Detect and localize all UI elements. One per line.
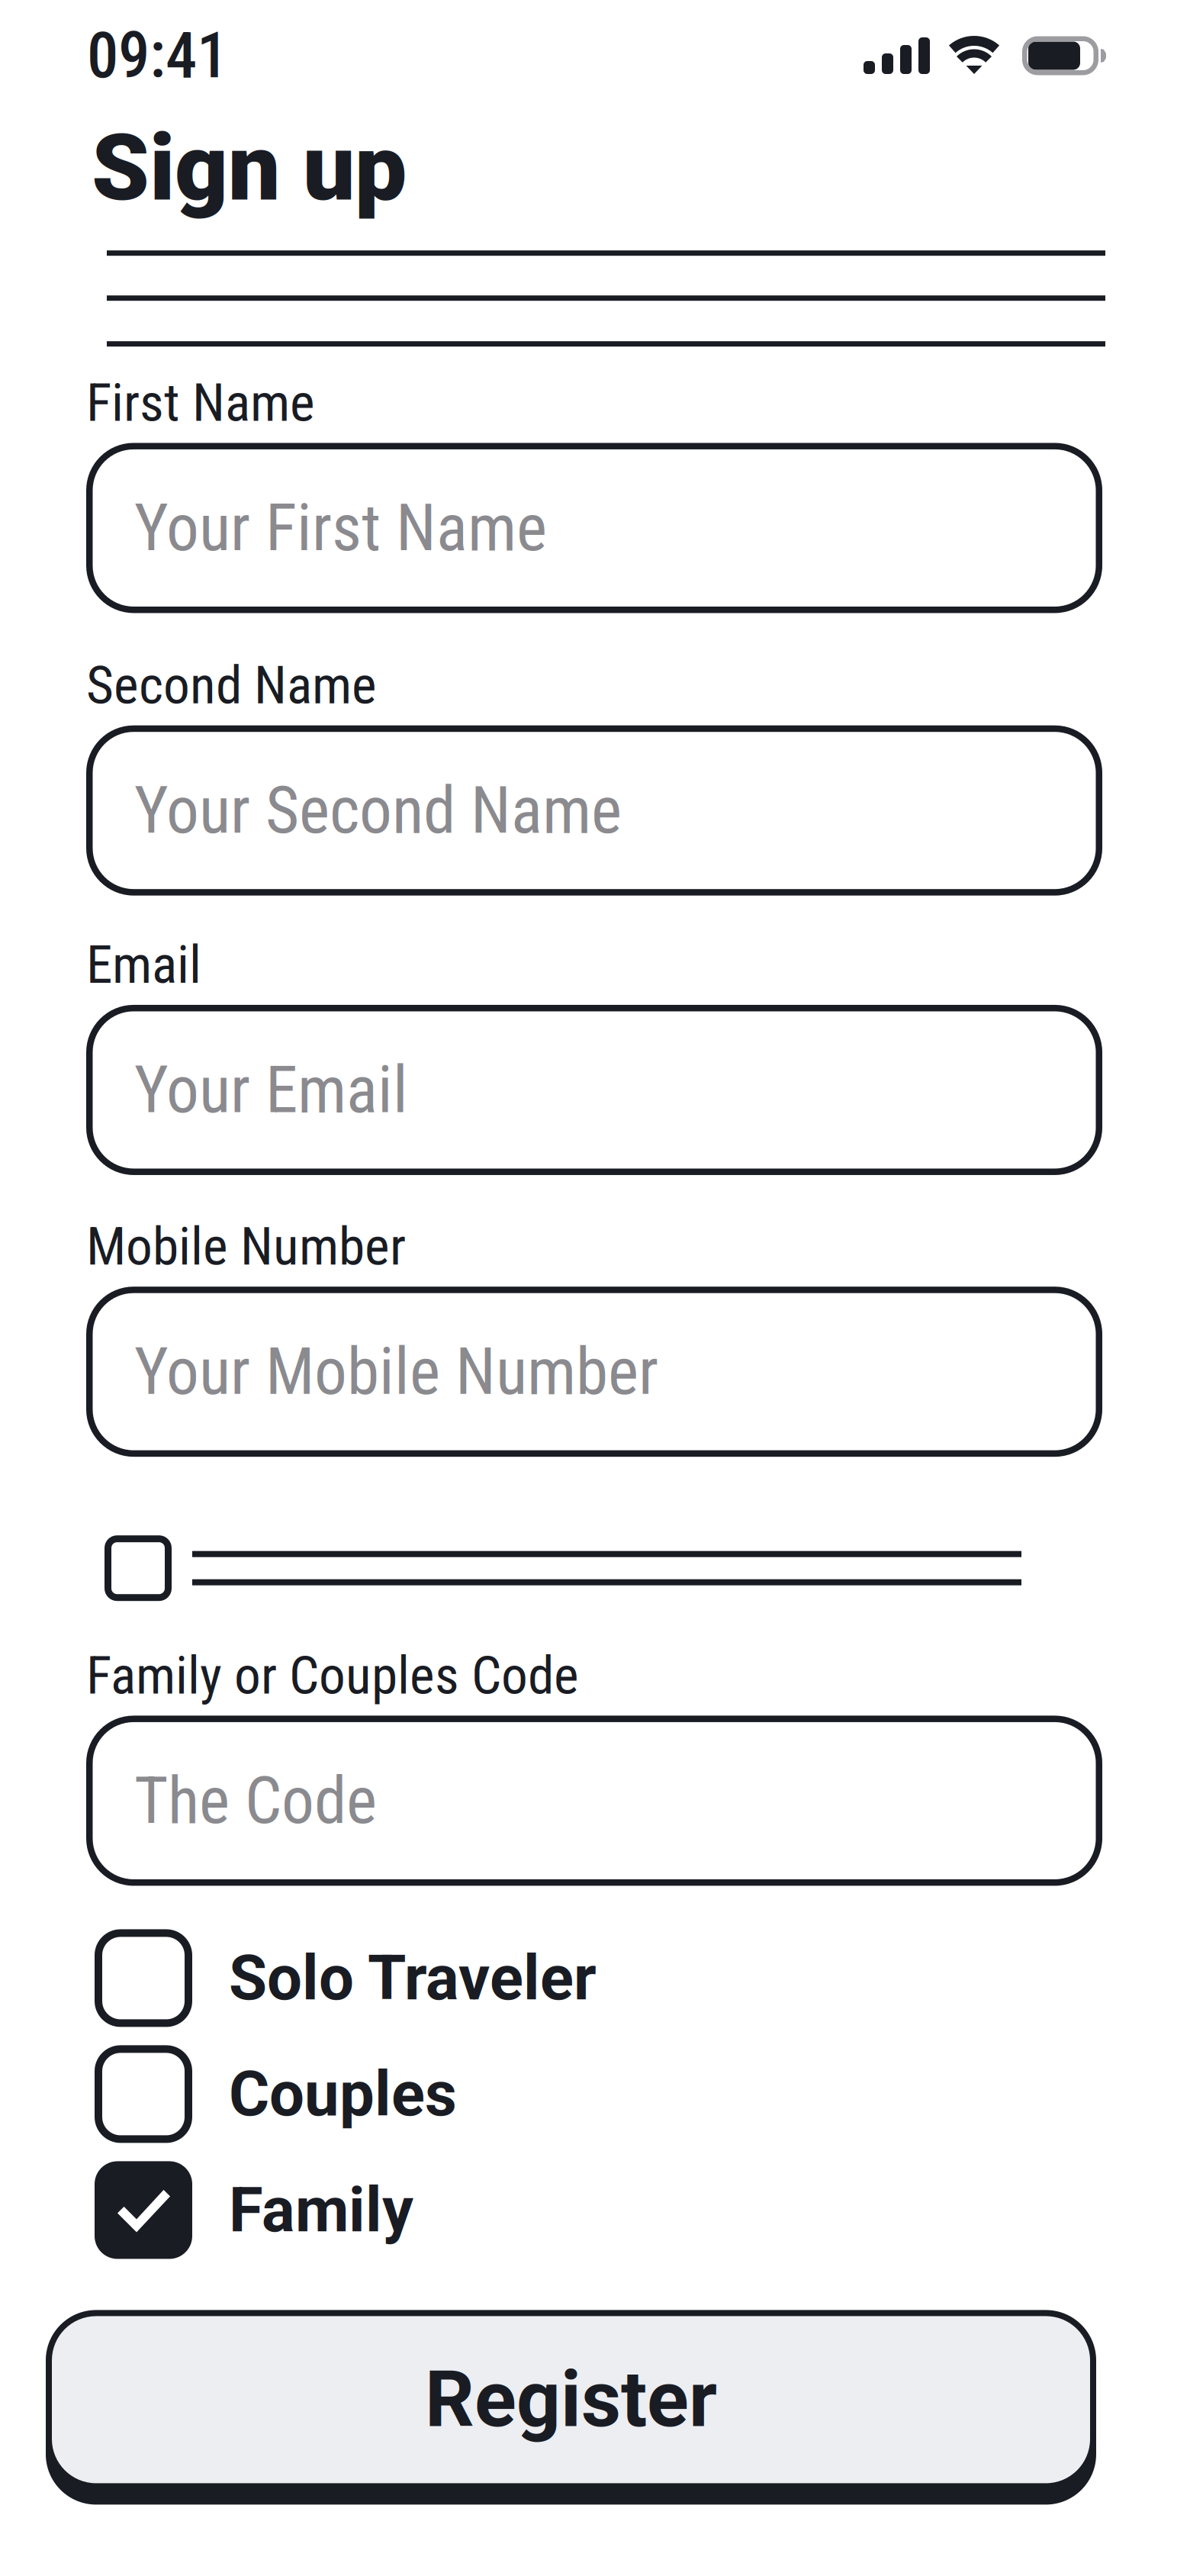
button[interactable]: Family [95, 2161, 444, 2259]
staticText: Sign up [92, 114, 407, 222]
button[interactable]: Your First Name [86, 443, 1102, 613]
button[interactable]: The Code [86, 1716, 1102, 1886]
staticText: Second Name [86, 654, 377, 716]
staticText: Family [229, 2174, 413, 2246]
staticText: First Name [86, 372, 315, 434]
staticText: Mobile Number [86, 1215, 406, 1277]
staticText: Your First Name [134, 490, 547, 566]
staticText: Your Mobile Number [134, 1334, 658, 1410]
staticText: Your Email [134, 1052, 408, 1128]
button[interactable]: Solo Traveler [95, 1929, 627, 2027]
button[interactable]: Register [46, 2302, 1096, 2497]
staticText: Family or Couples Code [86, 1644, 579, 1706]
staticText: The Code [134, 1763, 377, 1839]
button[interactable]: Accept terms and conditions [105, 1535, 172, 1601]
button[interactable]: Your Mobile Number [86, 1287, 1102, 1457]
button[interactable]: Your Email [86, 1005, 1102, 1175]
staticText: Email [86, 934, 201, 996]
staticText: Couples [229, 2058, 457, 2130]
staticText: Register [425, 2354, 717, 2445]
button[interactable]: Your Second Name [86, 725, 1102, 896]
button[interactable]: Couples [95, 2045, 487, 2143]
staticText: 09:41 [87, 19, 228, 93]
staticText: Solo Traveler [229, 1942, 597, 2014]
staticText: Your Second Name [134, 772, 622, 849]
